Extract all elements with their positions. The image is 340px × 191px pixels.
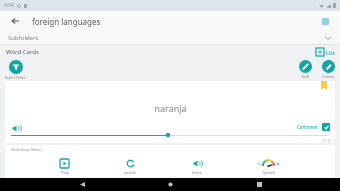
staticText: Speed (263, 170, 275, 175)
button[interactable]: Adjust speed (257, 159, 280, 175)
button[interactable]: Comment (297, 124, 318, 130)
staticText: Play (61, 170, 69, 175)
button[interactable]: Bookmark (5, 81, 335, 143)
button[interactable]: Edit (299, 60, 312, 79)
button[interactable]: Back (75, 178, 89, 191)
staticText: speed (124, 170, 136, 175)
staticText: foreign languages (32, 16, 101, 27)
staticText: List (326, 49, 335, 56)
staticText: Voice (192, 170, 202, 175)
button[interactable]: Voice (192, 159, 202, 175)
staticText: Slideshow Menu (11, 147, 42, 152)
other: Bookmark (321, 81, 327, 90)
button[interactable]: Back (8, 14, 22, 28)
staticText: Create (322, 74, 335, 79)
button[interactable]: Home (163, 178, 177, 191)
staticText: Subfolders (8, 34, 39, 42)
button[interactable]: speed (124, 159, 136, 175)
button[interactable]: Card progress (11, 132, 329, 138)
staticText: 1 / 2 (322, 138, 331, 143)
staticText: Word Cards (6, 48, 39, 56)
button[interactable]: Create (322, 60, 335, 79)
staticText: Edit (302, 74, 310, 79)
button[interactable]: Recent apps (252, 178, 266, 191)
button[interactable]: List (316, 48, 335, 56)
button[interactable]: Sort / Filter (5, 60, 26, 80)
button[interactable]: Expand subfolders (322, 32, 334, 44)
button[interactable]: Play (60, 159, 69, 175)
staticText: naranja (154, 102, 187, 114)
staticText: 4:54 (4, 2, 14, 9)
button[interactable]: Select all (318, 14, 332, 28)
button[interactable]: Learned (322, 123, 330, 131)
staticText: Sort / Filter (5, 75, 26, 80)
button[interactable]: Play audio (10, 122, 22, 134)
